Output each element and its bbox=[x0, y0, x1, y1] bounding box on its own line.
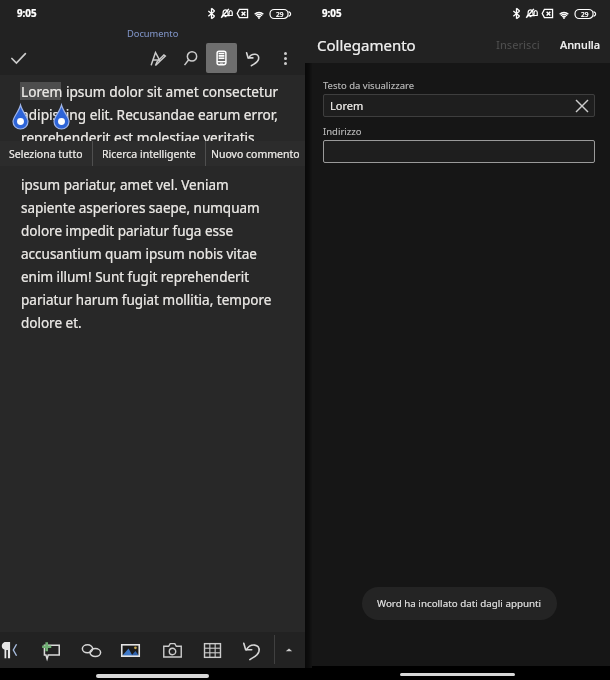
button[interactable]: Table bbox=[196, 634, 228, 666]
staticText: Lorem ipsum dolor sit amet consectetur a… bbox=[21, 82, 279, 147]
button[interactable]: Picture bbox=[114, 634, 146, 666]
button[interactable]: Expand toolbar bbox=[273, 634, 305, 666]
button[interactable]: Link bbox=[75, 634, 107, 666]
button[interactable]: Inserisci bbox=[488, 31, 548, 58]
staticText: Nuovo commento bbox=[211, 147, 300, 161]
button[interactable]: Undo bbox=[237, 42, 269, 74]
button[interactable]: Mobile view bbox=[206, 43, 237, 73]
button[interactable]: Nuovo commento bbox=[206, 141, 305, 166]
staticText: Documento bbox=[127, 27, 179, 40]
button[interactable]: Clear text bbox=[573, 97, 591, 115]
staticText: 9:05 bbox=[322, 7, 342, 20]
button[interactable] bbox=[323, 140, 595, 163]
button[interactable]: Camera bbox=[156, 634, 188, 666]
staticText: Indirizzo bbox=[323, 125, 362, 138]
staticText: Testo da visualizzare bbox=[323, 79, 415, 92]
button[interactable]: More options bbox=[269, 42, 301, 74]
staticText: Annulla bbox=[560, 37, 601, 52]
button[interactable]: Ricerca intelligente bbox=[93, 141, 205, 166]
staticText: 29 bbox=[581, 10, 589, 19]
button[interactable]: Seleziona tutto bbox=[0, 141, 92, 166]
button[interactable]: Lorem bbox=[323, 94, 595, 117]
staticText: Inserisci bbox=[496, 37, 540, 52]
staticText: Word ha incollato dati dagli appunti bbox=[377, 597, 542, 610]
staticText: Seleziona tutto bbox=[9, 147, 83, 161]
button[interactable]: Paragraph marks bbox=[0, 634, 25, 666]
button[interactable]: Read aloud bbox=[142, 42, 174, 74]
button[interactable]: Done bbox=[4, 44, 32, 72]
staticText: Lorem bbox=[330, 98, 364, 113]
button[interactable]: Undo bbox=[236, 634, 268, 666]
staticText: 9:05 bbox=[17, 7, 37, 20]
button[interactable]: Word ha incollato dati dagli appunti bbox=[362, 587, 557, 620]
staticText: Ricerca intelligente bbox=[102, 147, 196, 161]
staticText: ipsum pariatur, amet vel. Veniam sapient… bbox=[21, 176, 272, 332]
staticText: Collegamento bbox=[317, 35, 416, 55]
button[interactable]: New comment bbox=[34, 634, 66, 666]
button[interactable]: Search bbox=[174, 42, 206, 74]
staticText: 29 bbox=[276, 10, 284, 19]
button[interactable]: Annulla bbox=[548, 31, 610, 58]
